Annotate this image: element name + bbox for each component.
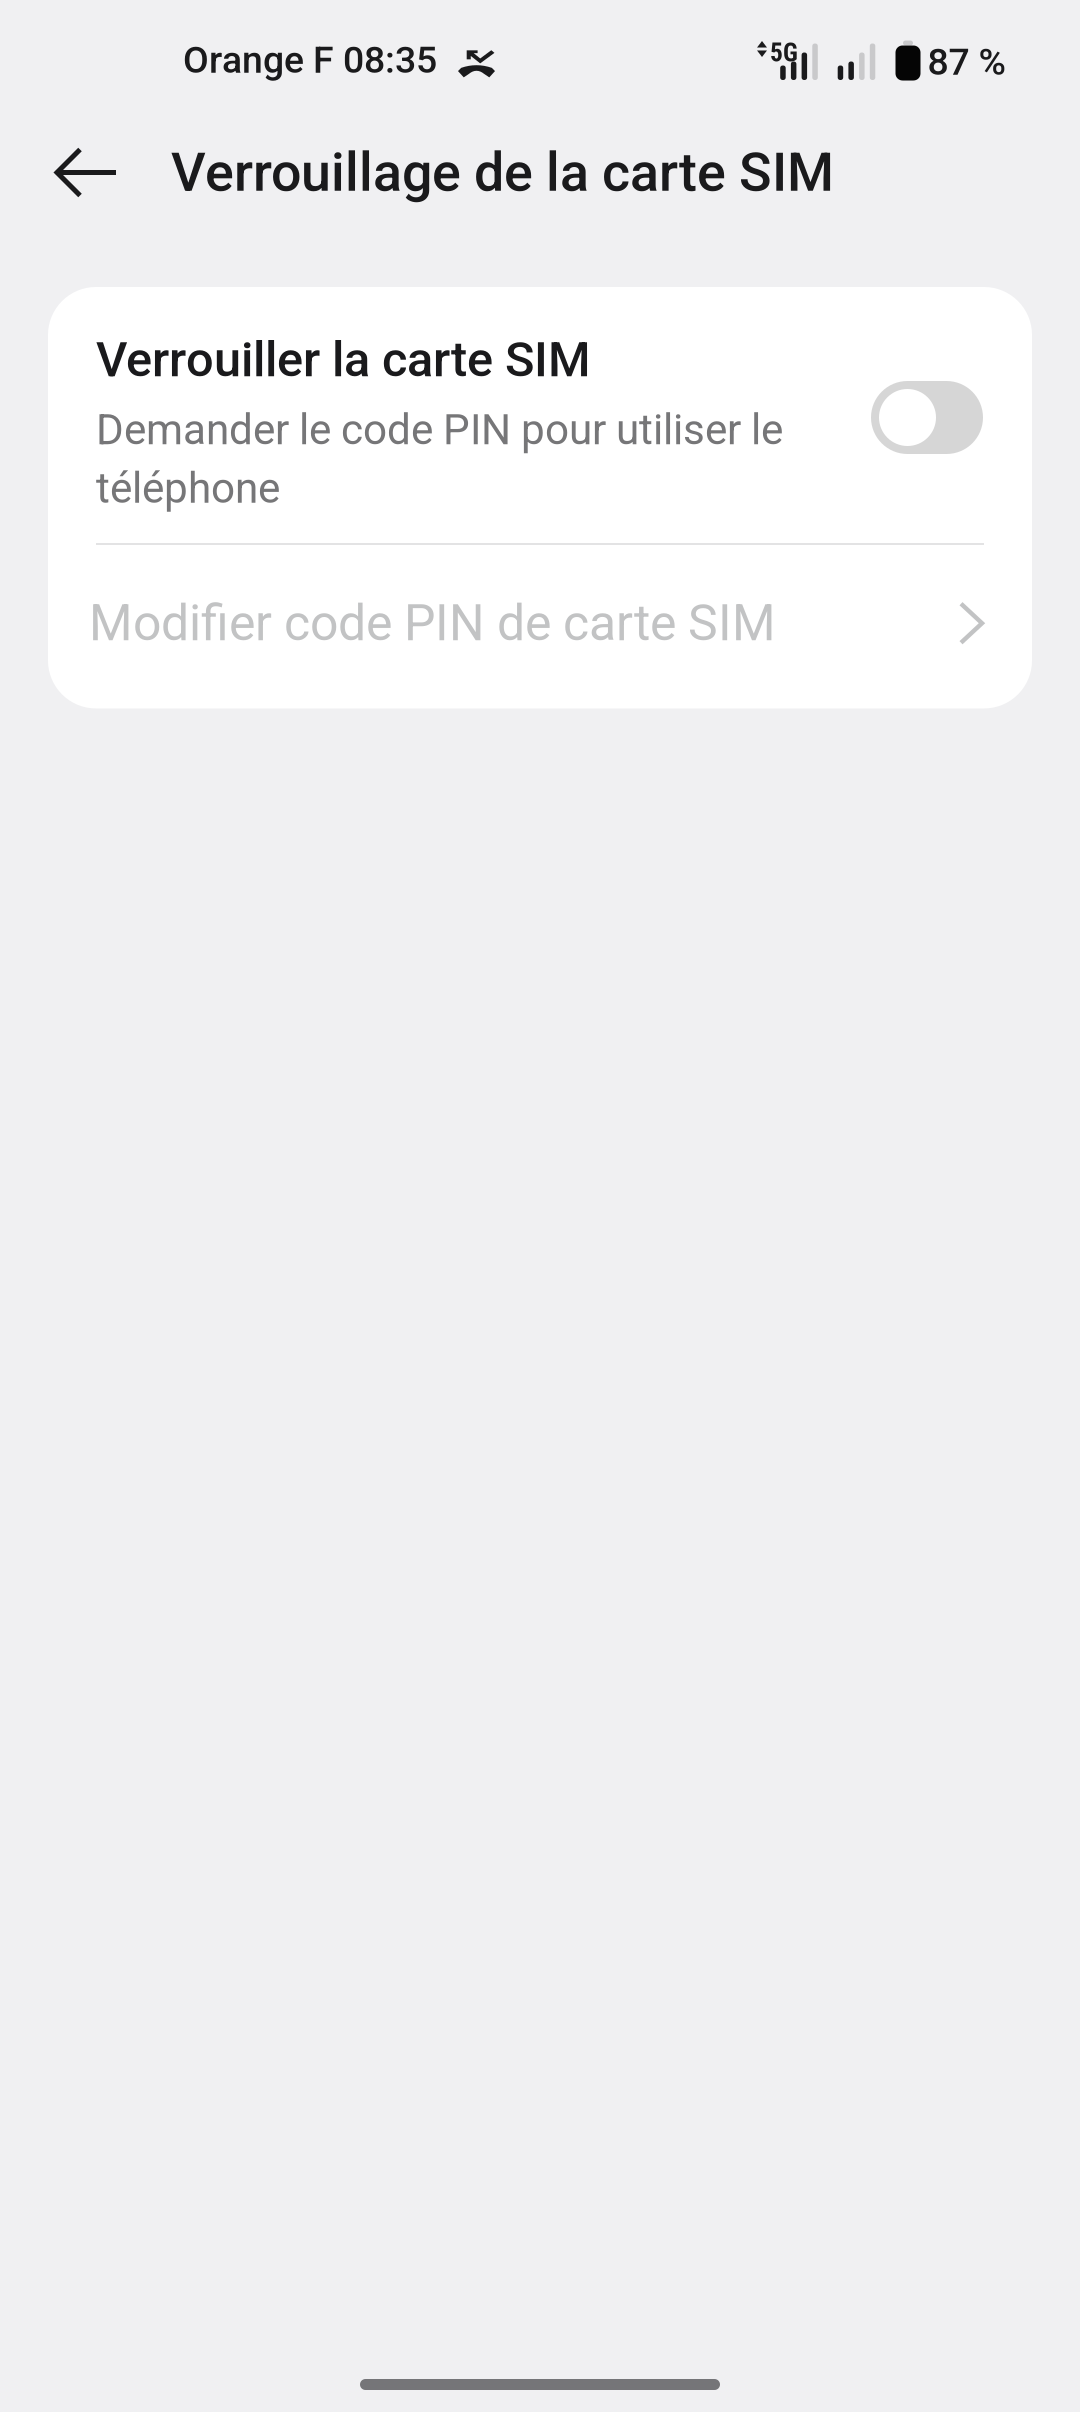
staticText: Verrouiller la carte SIM — [96, 331, 591, 388]
staticText: Demander le code PIN pour utiliser le té… — [96, 405, 783, 513]
button[interactable]: Retour — [0, 123, 171, 221]
button[interactable]: Verrouiller la carte SIM — [48, 287, 1032, 543]
staticText: 5G — [770, 38, 798, 68]
staticText: Verrouillage de la carte SIM — [171, 141, 834, 204]
button[interactable]: Modifier code PIN de carte SIM — [48, 545, 1032, 708]
staticText: 87 % — [927, 40, 1005, 84]
staticText: Modifier code PIN de carte SIM — [89, 594, 776, 652]
staticText: Orange F 08:35 — [183, 38, 437, 82]
